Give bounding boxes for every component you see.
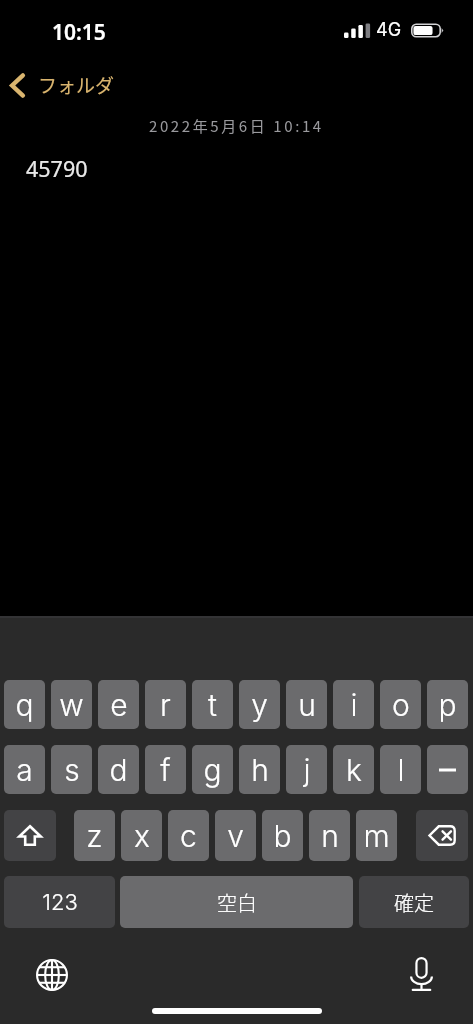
- staticText: d: [109, 752, 128, 788]
- button[interactable]: k: [333, 745, 374, 794]
- staticText: j: [303, 752, 311, 788]
- button[interactable]: s: [51, 745, 92, 794]
- staticText: 確定: [394, 888, 434, 917]
- button[interactable]: y: [239, 680, 280, 729]
- button[interactable]: e: [98, 680, 139, 729]
- button[interactable]: フォルダ: [10, 65, 115, 105]
- staticText: 45790: [26, 154, 88, 183]
- button[interactable]: z: [74, 810, 115, 861]
- button[interactable]: q: [4, 680, 45, 729]
- button[interactable]: x: [121, 810, 162, 861]
- staticText: u: [298, 687, 316, 723]
- button[interactable]: u: [286, 680, 327, 729]
- button[interactable]: [4, 810, 56, 861]
- button[interactable]: d: [98, 745, 139, 794]
- button[interactable]: 空白: [120, 876, 353, 928]
- staticText: 4G: [376, 19, 402, 41]
- staticText: g: [203, 752, 222, 788]
- button[interactable]: f: [145, 745, 186, 794]
- button[interactable]: g: [192, 745, 233, 794]
- button[interactable]: t: [192, 680, 233, 729]
- staticText: q: [15, 687, 34, 723]
- button[interactable]: m: [356, 810, 397, 861]
- staticText: フォルダ: [38, 71, 115, 99]
- staticText: t: [208, 687, 217, 723]
- staticText: 10:15: [52, 18, 106, 47]
- button[interactable]: l: [380, 745, 421, 794]
- button[interactable]: w: [51, 680, 92, 729]
- button[interactable]: r: [145, 680, 186, 729]
- staticText: s: [64, 752, 80, 788]
- staticText: x: [134, 818, 150, 854]
- staticText: b: [273, 818, 292, 854]
- button[interactable]: c: [168, 810, 209, 861]
- button[interactable]: h: [239, 745, 280, 794]
- staticText: k: [346, 752, 362, 788]
- staticText: y: [251, 687, 268, 723]
- staticText: c: [180, 818, 197, 854]
- staticText: p: [438, 687, 457, 723]
- staticText: r: [160, 687, 171, 723]
- button[interactable]: b: [262, 810, 303, 861]
- button[interactable]: i: [333, 680, 374, 729]
- staticText: l: [397, 752, 405, 788]
- staticText: 空白: [217, 888, 257, 917]
- button[interactable]: a: [4, 745, 45, 794]
- staticText: w: [59, 687, 84, 723]
- staticText: f: [160, 752, 171, 788]
- button[interactable]: n: [309, 810, 350, 861]
- staticText: 2022年5月6日 10:14: [149, 115, 324, 137]
- staticText: 123: [42, 889, 78, 916]
- button[interactable]: o: [380, 680, 421, 729]
- staticText: o: [392, 687, 410, 723]
- staticText: a: [16, 752, 33, 788]
- button[interactable]: [427, 745, 468, 794]
- staticText: n: [321, 818, 339, 854]
- button[interactable]: j: [286, 745, 327, 794]
- staticText: v: [227, 818, 244, 854]
- staticText: h: [251, 752, 269, 788]
- button[interactable]: v: [215, 810, 256, 861]
- staticText: i: [350, 687, 358, 723]
- staticText: z: [86, 818, 103, 854]
- button[interactable]: 123: [4, 876, 115, 928]
- staticText: m: [363, 818, 390, 854]
- button[interactable]: Switch keyboard: [30, 953, 74, 997]
- button[interactable]: p: [427, 680, 468, 729]
- button[interactable]: Dictation: [399, 952, 443, 996]
- button[interactable]: [416, 810, 468, 861]
- staticText: e: [110, 687, 128, 723]
- button[interactable]: 確定: [359, 876, 469, 928]
